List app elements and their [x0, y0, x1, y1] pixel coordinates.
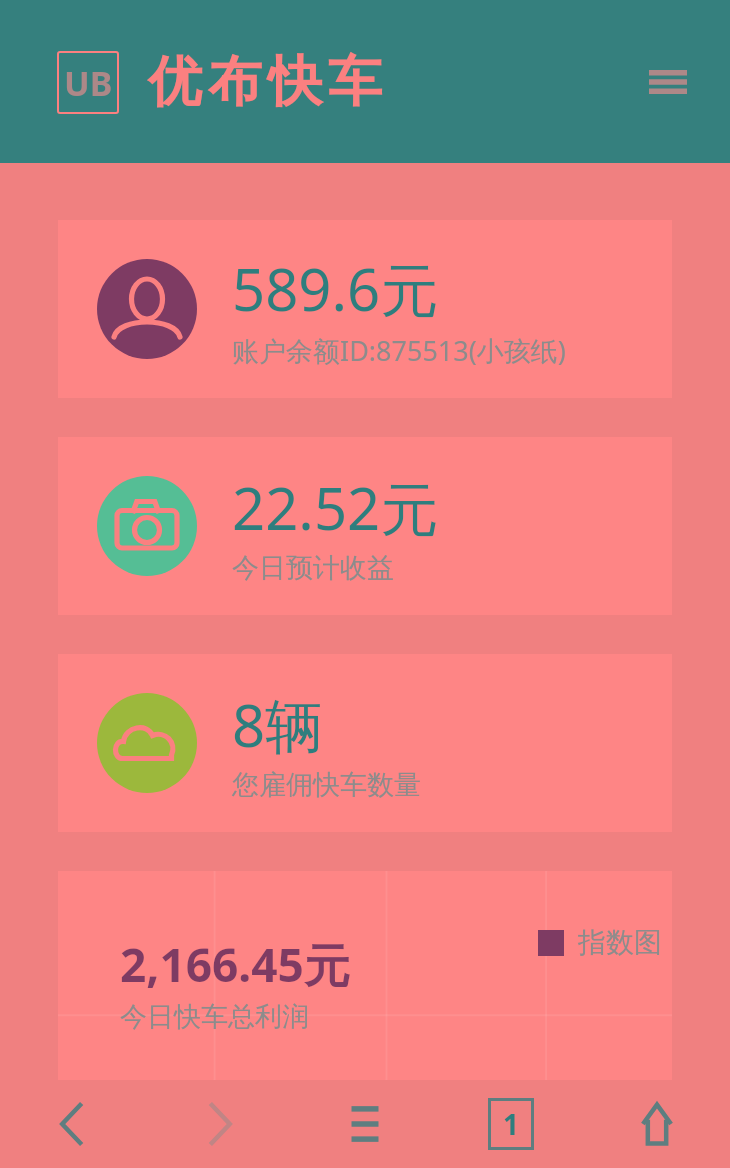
staticText: 账户余额ID:875513(小孩纸): [232, 332, 566, 369]
button[interactable]: Home: [584, 1080, 730, 1168]
staticText: 今日预计收益: [232, 551, 394, 585]
button[interactable]: Forward: [146, 1080, 292, 1168]
staticText: 今日快车总利润: [120, 1000, 309, 1034]
staticText: UB: [64, 60, 113, 106]
button[interactable]: 589.6元: [58, 220, 672, 398]
staticText: 您雇佣快车数量: [232, 768, 421, 802]
staticText: 22.52元: [232, 468, 439, 547]
staticText: 指数图: [578, 925, 662, 960]
staticText: 优布快车: [145, 48, 385, 116]
staticText: 1: [503, 1105, 520, 1143]
button[interactable]: Tabs: [438, 1080, 584, 1168]
button[interactable]: Back: [0, 1080, 146, 1168]
staticText: 8辆: [232, 685, 324, 764]
staticText: 589.6元: [232, 249, 439, 328]
button[interactable]: Menu: [292, 1080, 438, 1168]
staticText: 2,166.45元: [120, 933, 350, 996]
button[interactable]: 8辆: [58, 654, 672, 832]
button[interactable]: 2,166.45元: [58, 871, 672, 1080]
button[interactable]: Menu: [640, 54, 696, 110]
button[interactable]: 22.52元: [58, 437, 672, 615]
